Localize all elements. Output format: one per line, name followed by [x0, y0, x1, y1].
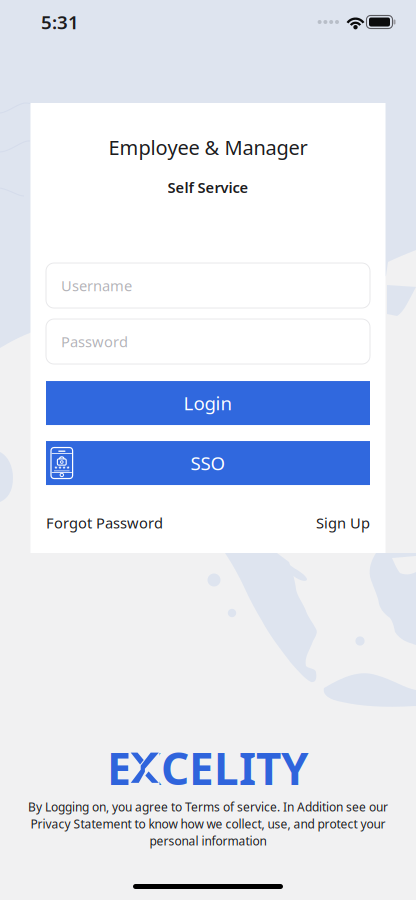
- staticText: Username: [61, 276, 132, 295]
- staticText: personal information: [149, 833, 266, 849]
- button[interactable]: Login: [46, 381, 370, 425]
- button[interactable]: Sign Up: [316, 513, 370, 532]
- staticText: SSO: [190, 451, 225, 475]
- staticText: Login: [183, 391, 232, 415]
- staticText: Privacy Statement to know how we collect…: [30, 816, 385, 832]
- staticText: Password: [61, 332, 128, 351]
- staticText: 5:31: [41, 10, 79, 34]
- staticText: By Logging on, you agree to Terms of ser…: [28, 799, 388, 815]
- staticText: Employee & Manager: [108, 134, 307, 161]
- staticText: Self Service: [167, 178, 248, 197]
- staticText: Forgot Password: [46, 513, 163, 532]
- button[interactable]: SSO: [46, 441, 370, 485]
- button[interactable]: Forgot Password: [46, 513, 163, 532]
- staticText: Sign Up: [316, 513, 370, 532]
- staticText: EXCELITY: [107, 739, 309, 797]
